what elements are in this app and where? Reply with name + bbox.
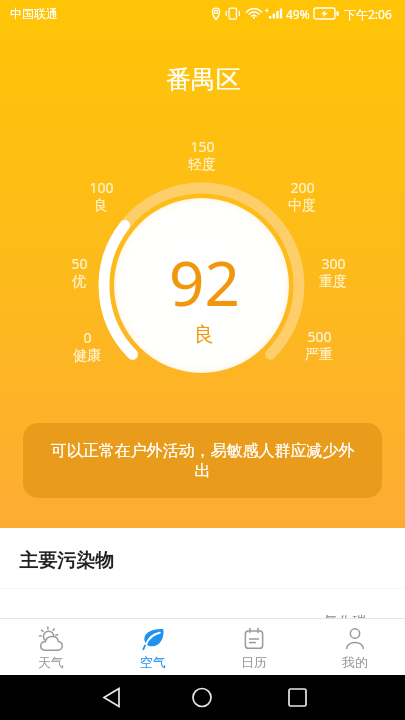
staticText: 49%	[286, 6, 310, 22]
staticText: 500	[307, 327, 332, 346]
button[interactable]: Profile	[304, 618, 405, 675]
staticText: 天气	[38, 654, 64, 670]
staticText: 良	[194, 322, 214, 347]
staticText: 优	[72, 273, 86, 291]
staticText: 主要污染物	[19, 549, 114, 573]
staticText: 我的	[342, 654, 368, 670]
button[interactable]: Calendar	[203, 618, 304, 675]
staticText: 重度	[319, 273, 347, 291]
staticText: PM2.5	[47, 613, 88, 632]
staticText: 下午2:06	[344, 6, 392, 22]
staticText: 中度	[288, 197, 316, 215]
button[interactable]: Air quality	[102, 618, 203, 675]
staticText: 200	[290, 178, 315, 197]
staticText: 严重	[305, 346, 333, 364]
staticText: 150	[190, 137, 215, 156]
staticText: 良	[94, 197, 108, 215]
button[interactable]: Weather	[0, 618, 102, 675]
staticText: 0	[83, 328, 92, 347]
staticText: 可以正常在户外活动，易敏感人群应减少外出	[43, 441, 362, 481]
staticText: PM10	[184, 613, 222, 632]
staticText: 100	[89, 178, 114, 197]
button[interactable]: 可以正常在户外活动，易敏感人群应减少外出	[23, 423, 382, 498]
staticText: 空气	[140, 654, 166, 670]
staticText: 番禺区	[166, 64, 241, 95]
staticText: 中国联通	[10, 6, 58, 21]
staticText: 轻度	[188, 156, 216, 174]
staticText: 健康	[73, 347, 101, 365]
staticText: 36	[57, 640, 78, 665]
staticText: 0.6	[325, 639, 351, 664]
staticText: 50	[71, 254, 88, 273]
staticText: 日历	[241, 654, 267, 670]
staticText: 300	[321, 254, 346, 273]
staticText: 一氧化碳	[310, 613, 366, 631]
staticText: 92	[169, 240, 240, 324]
